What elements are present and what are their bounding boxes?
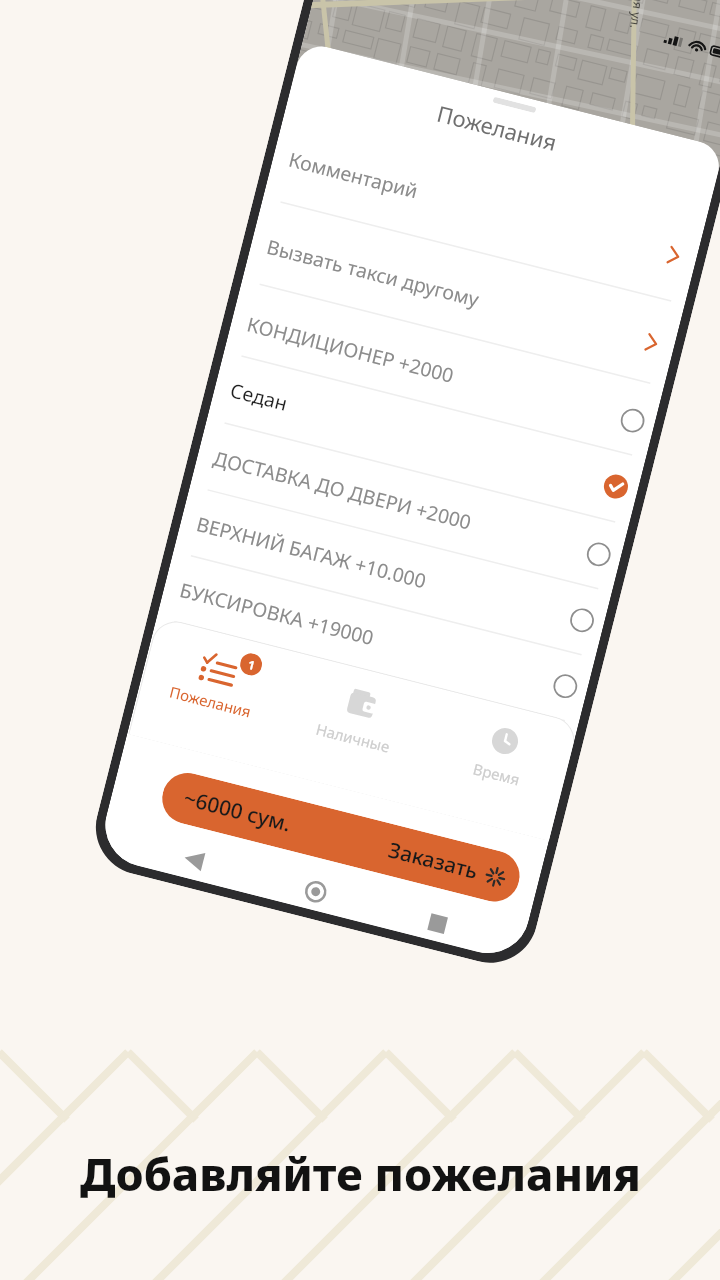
- other: Select option: [551, 672, 580, 701]
- other: Open: [644, 333, 659, 353]
- staticText: Заказать: [385, 835, 482, 886]
- staticText: Пожелания: [290, 61, 711, 195]
- staticText: БУКСИРОВКА +19000: [177, 576, 377, 651]
- button[interactable]: Седан: [227, 374, 291, 418]
- button[interactable]: КОНДИЦИОНЕР +2000: [244, 309, 458, 390]
- staticText: Время: [471, 758, 522, 790]
- button[interactable]: ДОСТАВКА ДО ДВЕРИ +2000: [210, 442, 475, 537]
- staticText: 1: [246, 656, 257, 673]
- other: Recents: [427, 913, 448, 934]
- staticText: ДОСТАВКА ДО ДВЕРИ +2000: [210, 444, 475, 536]
- other: Select option: [584, 540, 613, 569]
- other: Home: [303, 879, 328, 904]
- other: Select option: [567, 606, 597, 635]
- staticText: Вызвать такси другому: [264, 233, 482, 313]
- other: Open: [666, 246, 681, 266]
- staticText: ~6000 сум.: [181, 783, 295, 839]
- button[interactable]: БУКСИРОВКА +19000: [177, 574, 377, 652]
- other: Selected: [601, 472, 630, 501]
- staticText: Наличные: [314, 719, 392, 757]
- staticText: Добавляйте пожелания: [80, 1143, 641, 1204]
- button[interactable]: Пожелания: [190, 641, 248, 696]
- staticText: Комментарий: [286, 146, 422, 204]
- staticText: Гиждуванская ул.: [615, 0, 659, 32]
- button[interactable]: ~6000 сум.: [157, 767, 525, 907]
- other: Select option: [618, 406, 647, 435]
- button[interactable]: Время: [476, 714, 534, 768]
- button[interactable]: Наличные: [333, 677, 390, 732]
- button[interactable]: Вызвать такси другому: [264, 231, 482, 314]
- staticText: Пожелания: [167, 682, 254, 722]
- other: Back: [182, 848, 205, 871]
- button[interactable]: ВЕРХНИЙ БАГАЖ +10.000: [193, 508, 430, 595]
- button[interactable]: Комментарий: [286, 144, 422, 205]
- staticText: Седан: [228, 376, 290, 417]
- staticText: ВЕРХНИЙ БАГАЖ +10.000: [194, 510, 429, 594]
- staticText: КОНДИЦИОНЕР +2000: [244, 310, 457, 389]
- staticText: Shofirkon ko: [717, 3, 720, 82]
